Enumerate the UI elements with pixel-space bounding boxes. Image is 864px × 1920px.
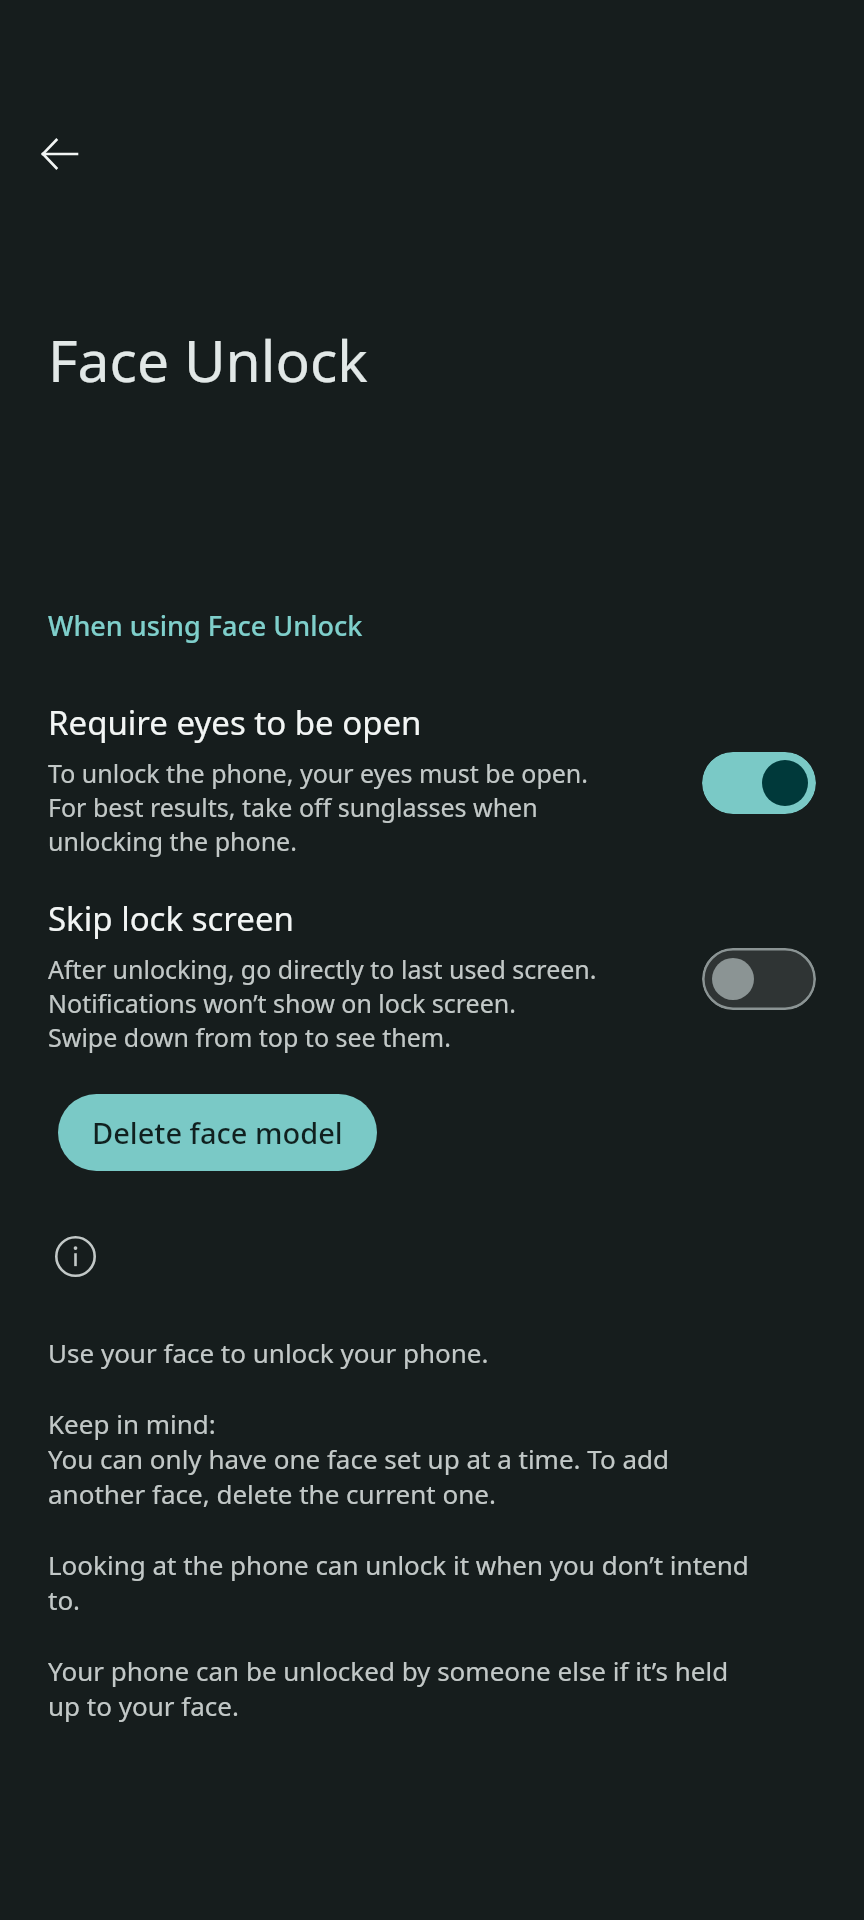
staticText: Notifications won’t show on lock screen. bbox=[48, 986, 516, 1020]
staticText: After unlocking, go directly to last use… bbox=[48, 952, 597, 986]
staticText: Your phone can be unlocked by someone el… bbox=[48, 1653, 729, 1688]
button[interactable]: Skip lock screen, off bbox=[702, 948, 816, 1010]
staticText: another face, delete the current one. bbox=[48, 1476, 496, 1511]
staticText: Keep in mind: bbox=[48, 1406, 216, 1441]
staticText: Skip lock screen bbox=[48, 896, 294, 941]
staticText: up to your face. bbox=[48, 1688, 239, 1723]
staticText: unlocking the phone. bbox=[48, 824, 297, 858]
staticText: to. bbox=[48, 1582, 81, 1617]
button[interactable]: Delete face model bbox=[58, 1094, 377, 1171]
button[interactable]: Require eyes to be open, on bbox=[702, 752, 816, 814]
button[interactable]: Back bbox=[30, 124, 90, 184]
staticText: Require eyes to be open bbox=[48, 700, 422, 745]
staticText: Use your face to unlock your phone. bbox=[48, 1335, 489, 1370]
staticText: For best results, take off sunglasses wh… bbox=[48, 790, 538, 824]
staticText: To unlock the phone, your eyes must be o… bbox=[48, 756, 589, 790]
button[interactable]: Require eyes to be open bbox=[0, 700, 864, 858]
button[interactable]: Skip lock screen bbox=[0, 896, 864, 1054]
staticText: You can only have one face set up at a t… bbox=[48, 1441, 669, 1476]
staticText: Swipe down from top to see them. bbox=[48, 1020, 451, 1054]
staticText: Face Unlock bbox=[48, 321, 368, 399]
staticText: Looking at the phone can unlock it when … bbox=[48, 1547, 749, 1582]
staticText: When using Face Unlock bbox=[48, 607, 363, 644]
staticText: Delete face model bbox=[92, 1113, 343, 1152]
